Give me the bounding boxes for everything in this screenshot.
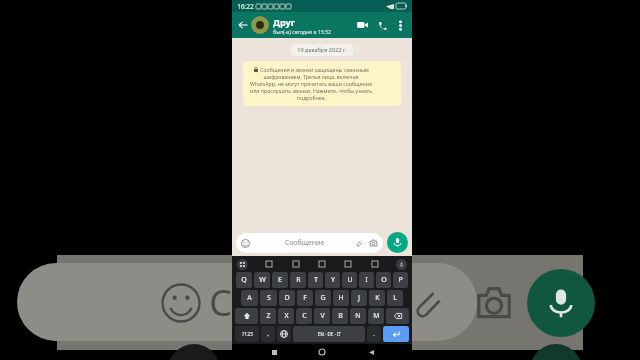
staticText: . [373,330,375,338]
button[interactable]: Enter [383,326,409,342]
button[interactable]: W [254,272,270,288]
button[interactable]: Tool 2 [291,259,301,269]
staticText: или прослушать звонки. Нажмите, чтобы уз… [250,87,372,94]
staticText: Сообщения и звонки защищены сквозным [260,66,369,73]
staticText: WhatsApp, не могут прочитать ваши сообще… [250,80,372,87]
staticText: T [314,275,318,285]
button[interactable]: Back [364,345,378,359]
button[interactable]: R [290,272,306,288]
staticText: J [358,293,360,303]
button[interactable]: Camera [475,284,513,322]
button[interactable]: Voice input [396,259,407,270]
button[interactable]: D [279,290,295,306]
staticText: 19 декабря 2022 г. [297,46,347,54]
button[interactable]: Keyboard menu [237,259,248,270]
staticText: подробнее. [297,94,326,101]
staticText: E [278,275,282,285]
staticText: Z [266,311,271,321]
staticText: W [259,275,266,285]
button[interactable]: J [351,290,367,306]
button[interactable]: More options [393,18,407,32]
button[interactable]: L [387,290,403,306]
button[interactable]: B [332,308,348,324]
button[interactable]: Друг [273,16,354,35]
button[interactable] [251,16,269,34]
button[interactable]: K [369,290,385,306]
button[interactable]: Shift [235,308,258,324]
staticText: O [381,275,387,285]
staticText: EN · DE · IT [318,331,341,337]
staticText: C [302,311,307,321]
button[interactable]: P [393,272,408,288]
staticText: X [284,311,289,321]
staticText: ?123 [242,331,253,338]
staticText: A [247,293,252,303]
staticText: , [267,330,269,338]
button[interactable]: Language [277,326,291,342]
button[interactable]: . [367,326,381,342]
staticText: G [320,293,326,303]
staticText: Y [331,275,335,285]
button[interactable]: Call [374,17,390,33]
staticText: R [296,275,301,285]
button[interactable]: N [350,308,366,324]
button[interactable]: Tool 4 [343,259,353,269]
button[interactable]: T [308,272,323,288]
button[interactable]: U [342,272,357,288]
button[interactable]: V [314,308,330,324]
button[interactable]: Voice message [527,269,595,337]
button[interactable]: X [278,308,294,324]
button[interactable]: Back [236,18,250,32]
button[interactable]: EN · DE · IT [293,326,365,342]
button[interactable]: Z [260,308,276,324]
button[interactable]: C [296,308,312,324]
button[interactable]: O [376,272,391,288]
staticText: B [338,311,343,321]
button[interactable]: Tool 3 [317,259,327,269]
staticText: K [375,293,380,303]
button[interactable]: Сообщения и звонки защищены сквозным [243,61,401,106]
button[interactable]: S [260,290,277,306]
staticText: L [393,293,397,303]
staticText: D [284,293,290,303]
button[interactable]: Recents [267,345,281,359]
button[interactable]: Сообщение [236,233,383,253]
button[interactable]: I [359,272,374,288]
staticText: Друг [273,16,295,28]
button[interactable]: F [297,290,313,306]
staticText: Сообщение [254,238,355,248]
staticText: был(-а) сегодня в 15:32 [273,28,331,35]
staticText: M [373,311,380,321]
staticText: Q [241,275,247,285]
button[interactable]: E [272,272,288,288]
staticText: Сообщен [209,278,371,327]
button[interactable]: Y [325,272,340,288]
button[interactable] [17,263,477,341]
staticText: N [355,311,361,321]
button[interactable]: , [261,326,275,342]
staticText: шифрованием. Третьи лица, включая [263,73,359,80]
button[interactable]: Q [236,272,252,288]
staticText: I [365,275,368,285]
button[interactable]: Backspace [386,308,409,324]
button[interactable]: Voice message [387,232,408,253]
button[interactable]: Video call [354,17,370,33]
button[interactable]: G [315,290,331,306]
staticText: P [398,275,403,285]
button[interactable]: ?123 [235,326,259,342]
staticText: V [320,311,325,321]
button[interactable]: Tool 5 [370,259,380,269]
button[interactable]: Emoji [161,283,201,323]
button[interactable]: M [368,308,384,324]
staticText: 16:22 [237,2,254,11]
staticText: S [267,293,271,303]
staticText: U [347,275,353,285]
button[interactable]: A [241,290,258,306]
button[interactable]: Tool 1 [264,259,274,269]
staticText: F [303,293,307,303]
button[interactable]: Home [315,345,329,359]
button[interactable]: H [333,290,349,306]
staticText: H [338,293,344,303]
